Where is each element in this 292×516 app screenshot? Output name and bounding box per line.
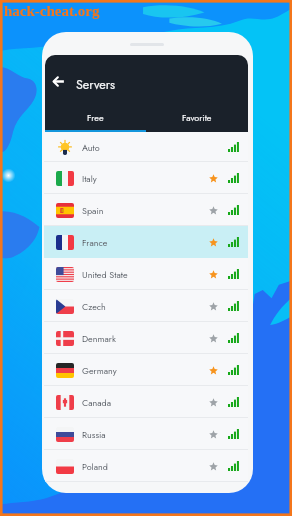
other: Signal strength: [228, 202, 239, 218]
staticText: Favorite: [182, 111, 212, 124]
other: Signal strength: [228, 170, 239, 186]
button[interactable]: Russia: [44, 418, 248, 450]
staticText: Free: [87, 111, 104, 124]
button[interactable]: Favorite Germany: [207, 364, 219, 376]
other: Signal strength: [228, 458, 239, 474]
button[interactable]: Favorite Russia: [207, 428, 219, 440]
staticText: Russia: [82, 428, 106, 441]
staticText: France: [82, 236, 108, 249]
button[interactable]: Favorite: [146, 105, 248, 132]
other: Signal strength: [228, 394, 239, 410]
button[interactable]: Favorite Czech: [207, 300, 219, 312]
button[interactable]: Favorite Spain: [207, 204, 219, 216]
staticText: United State: [82, 268, 128, 281]
staticText: hack-cheat.org: [4, 3, 100, 20]
staticText: Spain: [82, 204, 104, 217]
button[interactable]: Favorite Italy: [207, 172, 219, 184]
staticText: Germany: [82, 364, 117, 377]
staticText: Czech: [82, 300, 106, 313]
staticText: Italy: [82, 172, 97, 185]
button[interactable]: France: [44, 226, 248, 258]
button[interactable]: Italy: [44, 162, 248, 194]
other: Signal strength: [228, 362, 239, 378]
button[interactable]: Favorite Denmark: [207, 332, 219, 344]
button[interactable]: Favorite Poland: [207, 460, 219, 472]
button[interactable]: Auto: [44, 132, 248, 162]
other: Signal strength: [228, 330, 239, 346]
button[interactable]: Favorite France: [207, 236, 219, 248]
other: Signal strength: [228, 426, 239, 442]
other: Signal strength: [228, 266, 239, 282]
staticText: Auto: [82, 141, 100, 154]
button[interactable]: United State: [44, 258, 248, 290]
button[interactable]: Czech: [44, 290, 248, 322]
staticText: Servers: [76, 76, 116, 94]
staticText: Poland: [82, 460, 108, 473]
button[interactable]: Back: [47, 70, 69, 92]
button[interactable]: Canada: [44, 386, 248, 418]
other: Signal strength: [228, 139, 239, 155]
button[interactable]: Denmark: [44, 322, 248, 354]
staticText: Denmark: [82, 332, 116, 345]
button[interactable]: Spain: [44, 194, 248, 226]
button[interactable]: Favorite United State: [207, 268, 219, 280]
button[interactable]: Free: [45, 105, 146, 132]
staticText: Canada: [82, 396, 112, 409]
other: Signal strength: [228, 234, 239, 250]
button[interactable]: Germany: [44, 354, 248, 386]
button[interactable]: Favorite Canada: [207, 396, 219, 408]
other: Signal strength: [228, 298, 239, 314]
button[interactable]: Poland: [44, 450, 248, 482]
